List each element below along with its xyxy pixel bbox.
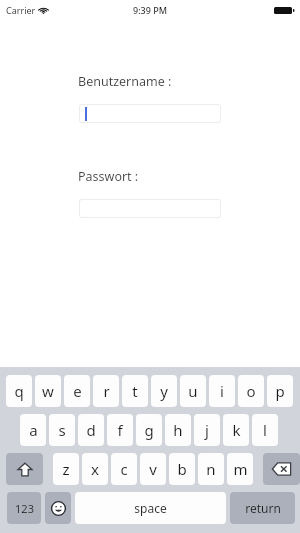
button[interactable]: u <box>180 375 206 407</box>
button[interactable]: 123 <box>7 492 41 524</box>
button[interactable]: t <box>122 375 148 407</box>
button[interactable]: b <box>169 453 195 485</box>
button[interactable]: m <box>227 453 253 485</box>
button[interactable]: z <box>53 453 79 485</box>
staticText: b <box>177 459 187 479</box>
staticText: t <box>132 381 138 401</box>
button[interactable]: o <box>238 375 264 407</box>
button[interactable]: p <box>267 375 293 407</box>
staticText: Carrier <box>6 4 36 16</box>
staticText: k <box>232 420 241 440</box>
button[interactable]: q <box>6 375 32 407</box>
staticText: j <box>205 420 209 440</box>
staticText: v <box>149 459 157 479</box>
staticText: o <box>246 381 256 401</box>
staticText: h <box>173 420 183 440</box>
staticText: Benutzername : <box>78 73 172 90</box>
staticText: a <box>29 420 38 440</box>
staticText: l <box>263 420 267 440</box>
button[interactable]: space <box>75 492 226 524</box>
staticText: m <box>233 459 248 479</box>
staticText: d <box>86 420 96 440</box>
staticText: n <box>206 459 216 479</box>
button[interactable] <box>79 104 221 123</box>
button[interactable]: x <box>82 453 108 485</box>
button[interactable]: h <box>165 414 191 446</box>
staticText: s <box>58 420 66 440</box>
button[interactable]: y <box>151 375 177 407</box>
button[interactable]: n <box>198 453 224 485</box>
button[interactable]: e <box>64 375 90 407</box>
button[interactable]: j <box>194 414 220 446</box>
staticText: z <box>62 459 70 479</box>
button[interactable]: f <box>107 414 133 446</box>
staticText: u <box>188 381 198 401</box>
button[interactable]: w <box>35 375 61 407</box>
staticText: w <box>42 381 54 401</box>
button[interactable]: Emoji keyboard <box>45 492 71 524</box>
staticText: e <box>73 381 82 401</box>
button[interactable]: g <box>136 414 162 446</box>
button[interactable]: s <box>49 414 75 446</box>
staticText: Passwort : <box>78 168 139 185</box>
button[interactable]: k <box>223 414 249 446</box>
staticText: i <box>220 381 224 401</box>
button[interactable]: l <box>252 414 278 446</box>
button[interactable]: v <box>140 453 166 485</box>
staticText: x <box>91 459 99 479</box>
staticText: f <box>117 420 123 440</box>
staticText: c <box>120 459 128 479</box>
staticText: q <box>14 381 24 401</box>
button[interactable]: return <box>230 492 295 524</box>
staticText: r <box>103 381 110 401</box>
button[interactable]: Backspace <box>263 453 300 485</box>
button[interactable]: c <box>111 453 137 485</box>
staticText: g <box>144 420 154 440</box>
button[interactable]: Shift <box>6 453 43 485</box>
button[interactable]: a <box>20 414 46 446</box>
staticText: return <box>245 500 281 516</box>
button[interactable] <box>79 199 221 218</box>
button[interactable]: i <box>209 375 235 407</box>
staticText: 9:39 PM <box>133 4 167 16</box>
staticText: y <box>160 381 168 401</box>
staticText: space <box>134 500 167 516</box>
staticText: 123 <box>15 501 34 516</box>
staticText: p <box>275 381 285 401</box>
button[interactable]: r <box>93 375 119 407</box>
button[interactable]: d <box>78 414 104 446</box>
